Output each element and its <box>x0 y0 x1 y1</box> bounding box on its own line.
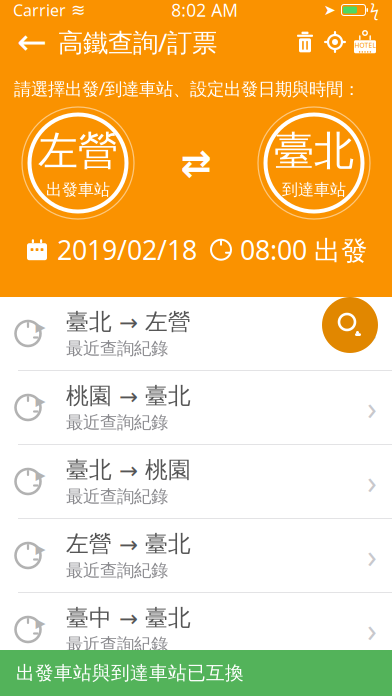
button[interactable]: 2019/02/18 <box>26 232 197 267</box>
staticText: ⇄ <box>180 142 211 184</box>
button[interactable]: ▸ <box>0 519 392 593</box>
staticText: 臺北 → 桃園 <box>66 456 191 484</box>
staticText: › <box>367 608 377 651</box>
button[interactable]: 左營 <box>21 106 135 220</box>
staticText: 臺北 → 左營 <box>66 308 191 336</box>
staticText: Carrier <box>13 0 66 21</box>
staticText: ϟ <box>370 0 379 21</box>
staticText: ← <box>17 22 47 62</box>
button[interactable]: 清除查詢紀錄 <box>290 20 320 64</box>
staticText: 左營 → 臺北 <box>66 530 191 558</box>
staticText: ▸ <box>35 611 45 634</box>
staticText: 臺北 <box>274 127 354 176</box>
staticText: › <box>367 534 377 577</box>
button[interactable]: ▸ <box>0 371 392 445</box>
staticText: 請選擇出發/到達車站、設定出發日期與時間： <box>14 77 360 100</box>
staticText: 最近查詢紀錄 <box>66 634 168 655</box>
staticText: 最近查詢紀錄 <box>66 486 168 507</box>
staticText: › <box>367 386 377 429</box>
staticText: ▸ <box>35 389 45 412</box>
button[interactable]: 訂房 <box>350 20 380 64</box>
staticText: 最近查詢紀錄 <box>66 338 168 359</box>
staticText: 2019/02/18 <box>57 232 197 267</box>
staticText: 最近查詢紀錄 <box>66 412 168 433</box>
button[interactable]: 08:00 出發 <box>210 232 368 267</box>
button[interactable]: 查詢車次 <box>322 297 378 353</box>
staticText: › <box>367 460 377 503</box>
staticText: HOTEL <box>354 41 375 50</box>
staticText: ➤ <box>323 2 335 18</box>
button[interactable]: ▸ <box>0 593 392 667</box>
staticText: › <box>367 312 377 355</box>
staticText: ▸ <box>35 463 45 486</box>
staticText: 08:00 出發 <box>240 232 368 267</box>
staticText: 出發車站 <box>46 180 110 199</box>
staticText: 最近查詢紀錄 <box>66 560 168 581</box>
button[interactable]: 返回 <box>14 20 50 64</box>
button[interactable]: ▸ <box>0 297 392 371</box>
staticText: ≋ <box>71 0 86 20</box>
staticText: 到達車站 <box>282 180 346 199</box>
button[interactable]: 互換出發與到達車站 <box>180 148 212 178</box>
button[interactable]: ▸ <box>0 445 392 519</box>
staticText: 高鐵查詢/訂票 <box>58 25 217 59</box>
staticText: ▸ <box>35 537 45 560</box>
staticText: 臺中 → 臺北 <box>66 604 191 632</box>
staticText: ▸ <box>35 315 45 338</box>
button[interactable]: 臺北 <box>257 106 371 220</box>
staticText: 左營 <box>38 127 118 176</box>
staticText: 8:02 AM <box>171 0 238 21</box>
button[interactable]: 定位最近車站 <box>320 20 350 64</box>
staticText: 出發車站與到達車站已互換 <box>16 661 244 684</box>
staticText: 桃園 → 臺北 <box>66 382 191 410</box>
